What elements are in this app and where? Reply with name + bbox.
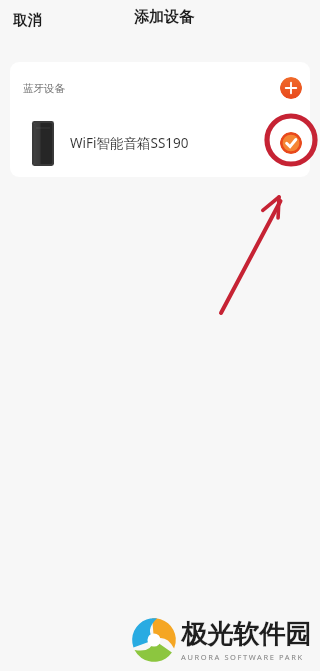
staticText: 取消 bbox=[13, 11, 42, 29]
staticText: AURORA SOFTWARE PARK bbox=[181, 652, 304, 662]
staticText: WiFi智能音箱SS190 bbox=[70, 134, 189, 152]
button[interactable]: 取消 bbox=[8, 8, 47, 32]
button[interactable]: 添加 bbox=[280, 77, 302, 99]
button[interactable]: 已选择 bbox=[280, 132, 302, 154]
staticText: 添加设备 bbox=[134, 8, 194, 27]
staticText: 极光软件园 bbox=[181, 618, 311, 651]
staticText: 蓝牙设备 bbox=[23, 82, 65, 95]
button[interactable]: WiFi智能音箱SS190 bbox=[10, 114, 310, 172]
